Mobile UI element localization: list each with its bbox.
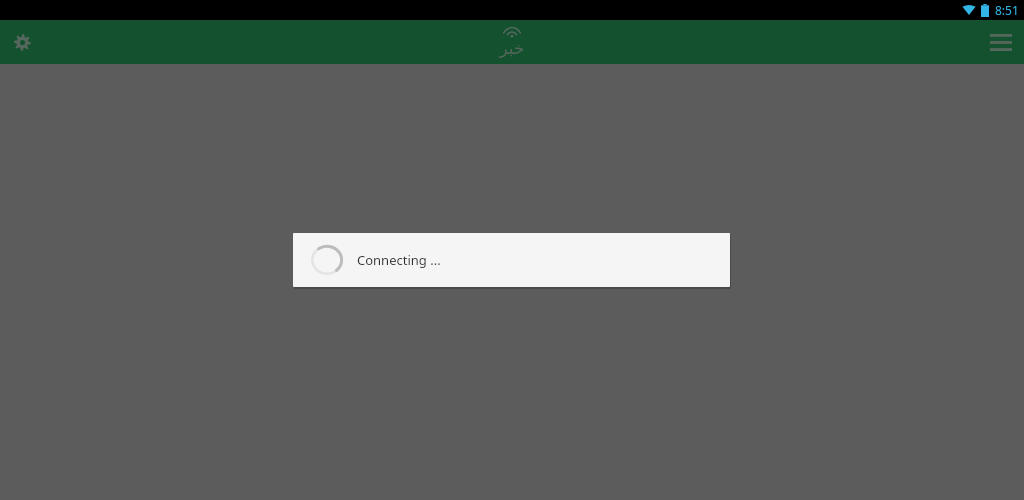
button[interactable]: Khabar <box>477 20 547 64</box>
button[interactable]: Settings <box>6 26 38 58</box>
staticText: 8:51 <box>995 2 1019 18</box>
button[interactable]: Menu <box>984 25 1018 59</box>
staticText: Connecting ... <box>357 251 441 269</box>
button[interactable]: Connecting ... <box>293 233 730 287</box>
staticText: خبر <box>499 38 525 58</box>
